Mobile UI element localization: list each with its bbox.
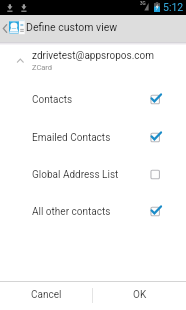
staticText: Cancel xyxy=(31,289,62,301)
staticText: 3G xyxy=(140,1,146,6)
staticText: Emailed Contacts xyxy=(32,132,111,144)
staticText: Global Address List xyxy=(32,169,119,181)
staticText: OK xyxy=(133,289,147,301)
button[interactable]: Global Address List xyxy=(0,156,186,193)
staticText: Contacts xyxy=(32,94,73,106)
button[interactable]: OK xyxy=(93,282,186,308)
button[interactable]: All other contacts xyxy=(0,193,186,230)
other: Collapse account xyxy=(0,45,32,80)
button[interactable]: Navigate up xyxy=(0,15,186,42)
button[interactable]: Contacts xyxy=(0,81,186,118)
button[interactable]: Collapse account xyxy=(0,45,186,80)
button[interactable]: Cancel xyxy=(0,282,92,308)
button[interactable]: Emailed Contacts xyxy=(0,119,186,156)
staticText: All other contacts xyxy=(32,206,111,218)
staticText: ZCard xyxy=(32,63,53,72)
staticText: Define custom view xyxy=(26,21,118,33)
other: Navigate up xyxy=(1,15,9,42)
staticText: zdrivetest@appsropos.com xyxy=(32,50,155,62)
staticText: 5:12 xyxy=(163,1,184,13)
